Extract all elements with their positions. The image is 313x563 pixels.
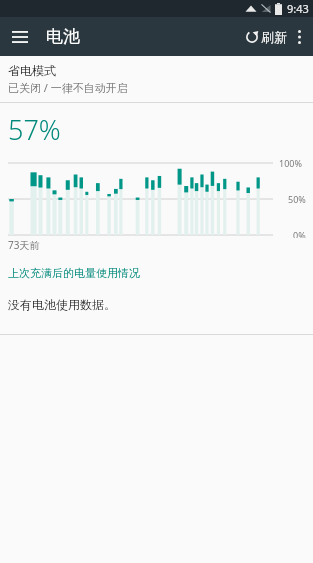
button[interactable]: More options (287, 25, 311, 49)
staticText: 没有电池使用数据。 (8, 297, 116, 312)
button[interactable]: Navigation menu (6, 23, 34, 51)
staticText: 刷新 (261, 29, 287, 45)
staticText: 9:43 (287, 1, 309, 16)
staticText: 省电模式 (8, 63, 56, 78)
button[interactable]: 省电模式 (0, 56, 313, 102)
staticText: 电池 (46, 26, 80, 47)
button[interactable]: 刷新 (245, 29, 287, 45)
staticText: 100% (279, 157, 302, 169)
staticText: 50% (288, 193, 306, 205)
button[interactable]: 上次充满后的电量使用情况 (0, 252, 313, 288)
staticText: 0% (293, 229, 306, 238)
staticText: 上次充满后的电量使用情况 (8, 266, 140, 280)
staticText: 57% (8, 111, 61, 148)
staticText: 已关闭 / 一律不自动开启 (8, 80, 128, 95)
staticText: 73天前 (8, 238, 40, 252)
